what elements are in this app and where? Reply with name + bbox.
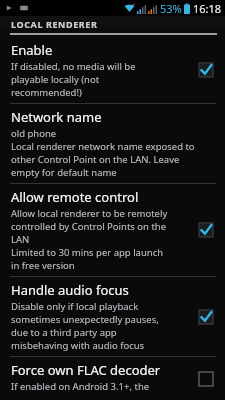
staticText: Allow remote control	[11, 188, 139, 206]
button[interactable]: Checked	[193, 57, 219, 83]
button[interactable]: Handle audio focus	[0, 277, 225, 356]
staticText: controlled by Control Points on the	[11, 220, 167, 233]
button[interactable]: LOCAL RENDERER	[0, 16, 225, 32]
staticText: LOCAL RENDERER	[11, 18, 98, 30]
staticText: other Control Point on the LAN. Leave	[11, 153, 180, 166]
staticText: Disable only if local playback	[11, 300, 139, 313]
staticText: due to a third party app	[11, 326, 117, 339]
button[interactable]: Force own FLAC decoder	[0, 357, 225, 400]
staticText: Limited to 30 mins per app launch	[11, 246, 164, 259]
button[interactable]: Enable	[0, 37, 225, 103]
staticText: Local renderer network name exposed to	[11, 140, 195, 153]
staticText: Allow local renderer to be remotely	[11, 207, 168, 220]
staticText: Enable	[11, 41, 53, 59]
staticText: empty for default name	[11, 166, 117, 179]
staticText: Network name	[11, 108, 102, 126]
staticText: old phone	[11, 127, 57, 140]
staticText: 53%	[160, 1, 182, 16]
staticText: recommended!)	[11, 86, 82, 99]
staticText: 16:18	[193, 1, 222, 16]
staticText: Force own FLAC decoder	[11, 361, 161, 379]
staticText: LAN	[11, 233, 30, 246]
button[interactable]: Checked	[193, 304, 219, 330]
staticText: Handle audio focus	[11, 281, 129, 299]
button[interactable]: Network name	[0, 104, 225, 183]
button[interactable]: Unchecked	[193, 366, 219, 392]
button[interactable]: Checked	[193, 217, 219, 243]
staticText: If disabled, no media will be	[11, 60, 136, 73]
staticText: sometimes unexpectedly pauses,	[11, 313, 159, 326]
staticText: If enabled on Android 3.1+, the	[11, 380, 150, 393]
staticText: misbehaving with audio focus	[11, 339, 145, 352]
staticText: in free version	[11, 259, 75, 272]
button[interactable]: Allow remote control	[0, 184, 225, 276]
staticText: playable locally (not	[11, 73, 100, 86]
